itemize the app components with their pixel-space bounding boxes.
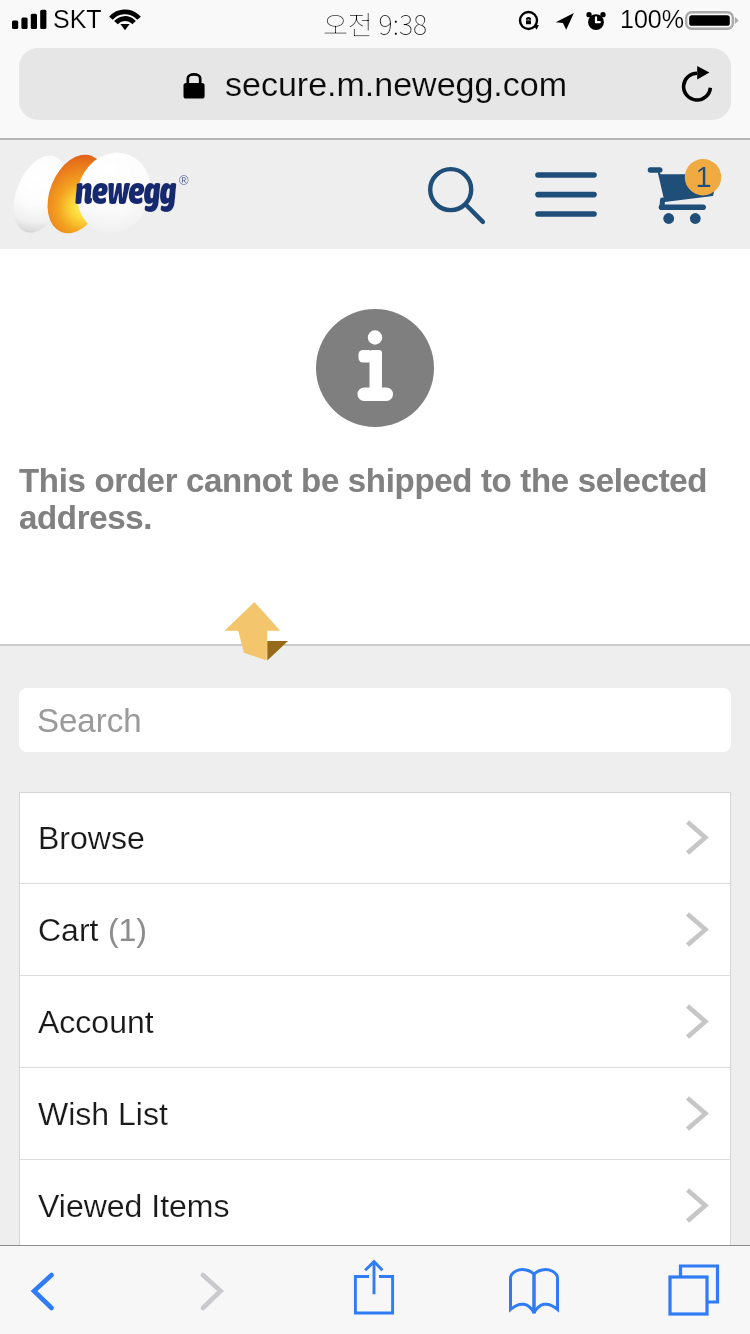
button[interactable]: Tabs <box>649 1246 737 1334</box>
staticText: ® <box>179 173 189 188</box>
staticText: Account <box>38 1004 154 1040</box>
button[interactable]: Forward <box>167 1246 255 1334</box>
button[interactable]: Search <box>411 148 495 236</box>
staticText: Cart <box>38 912 99 948</box>
staticText: Search <box>37 702 142 739</box>
staticText: 100% <box>620 5 684 33</box>
staticText: Browse <box>38 820 145 856</box>
button[interactable]: Shopping cart, 1 item <box>638 145 732 245</box>
button[interactable]: Reload <box>661 54 731 114</box>
button[interactable]: Account <box>19 976 731 1067</box>
button[interactable]: Browse <box>19 792 731 883</box>
staticText: 1 <box>695 161 712 193</box>
button[interactable]: Share <box>330 1246 418 1334</box>
staticText: secure.m.newegg.com <box>225 65 568 103</box>
button[interactable]: Bookmarks <box>490 1246 578 1334</box>
staticText: (1) <box>99 912 147 948</box>
button[interactable]: Viewed Items <box>19 1160 731 1251</box>
button[interactable]: Cart <box>19 884 731 975</box>
button[interactable]: secure.m.newegg.com <box>19 48 731 120</box>
staticText: This order cannot be shipped to the sele… <box>19 462 719 536</box>
staticText: SKT <box>53 5 102 33</box>
button[interactable]: newegg <box>16 148 194 242</box>
button[interactable]: Back <box>0 1246 86 1334</box>
staticText: Wish List <box>38 1096 168 1132</box>
staticText: Viewed Items <box>38 1188 230 1224</box>
button[interactable]: Menu <box>522 150 610 238</box>
button[interactable]: Wish List <box>19 1068 731 1159</box>
staticText: 오전 9:38 <box>323 4 428 43</box>
staticText: newegg <box>75 168 177 213</box>
button[interactable]: Search <box>19 688 731 752</box>
